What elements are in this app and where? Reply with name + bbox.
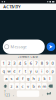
button[interactable]: a	[4, 75, 9, 82]
button[interactable]: u	[34, 68, 39, 74]
staticText: n	[38, 83, 40, 89]
staticText: p	[52, 68, 54, 73]
button[interactable]: 5	[23, 60, 28, 66]
staticText: 9	[46, 61, 48, 66]
staticText: b	[32, 83, 34, 89]
button[interactable]	[17, 90, 39, 97]
button[interactable]: k	[42, 75, 47, 82]
button[interactable]: 8	[39, 60, 44, 66]
staticText: h	[32, 76, 34, 81]
button[interactable]: h	[31, 75, 36, 82]
staticText: 4	[19, 61, 21, 66]
staticText: i	[41, 68, 42, 73]
button[interactable]: 2	[6, 60, 11, 66]
button[interactable]: q	[1, 68, 6, 74]
button[interactable]: 9	[45, 60, 50, 66]
button[interactable]: Emoji	[5, 45, 9, 49]
button[interactable]: 3	[12, 60, 17, 66]
button[interactable]: y	[28, 68, 33, 74]
staticText: u	[35, 68, 37, 73]
staticText: j	[38, 76, 39, 81]
staticText: l	[49, 76, 50, 81]
button[interactable]: Send	[47, 42, 55, 51]
button[interactable]: Backspace	[47, 83, 54, 89]
button[interactable]: w	[6, 68, 11, 74]
staticText: 3	[13, 61, 15, 66]
staticText: 6	[30, 61, 32, 66]
staticText: y	[30, 68, 32, 73]
button[interactable]: 4	[17, 60, 22, 66]
button[interactable]: 6	[28, 60, 33, 66]
button[interactable]: n	[36, 83, 41, 89]
button[interactable]: g	[26, 75, 30, 82]
button[interactable]: t	[23, 68, 28, 74]
button[interactable]: e	[12, 68, 17, 74]
staticText: z	[11, 83, 13, 89]
staticText: s	[11, 76, 13, 81]
button[interactable]: d	[15, 75, 19, 82]
button[interactable]: b	[31, 83, 36, 89]
staticText: x	[16, 83, 18, 89]
button[interactable]: f	[20, 75, 25, 82]
staticText: r	[19, 68, 21, 73]
button[interactable]: ,	[11, 90, 16, 97]
button[interactable]: j	[36, 75, 41, 82]
staticText: 0	[52, 61, 54, 66]
staticText: k	[43, 76, 45, 81]
button[interactable]: ACTIVITY	[1, 3, 22, 10]
staticText: m	[42, 83, 46, 89]
button[interactable]: o	[45, 68, 50, 74]
button[interactable]: ?123	[4, 90, 10, 97]
button[interactable]: z	[9, 83, 14, 89]
staticText: ACTIVITY	[3, 4, 20, 9]
staticText: v	[27, 83, 29, 89]
button[interactable]: m	[42, 83, 47, 89]
staticText: Message	[10, 44, 26, 49]
button[interactable]: v	[26, 83, 30, 89]
staticText: t	[25, 68, 26, 73]
button[interactable]: 1	[1, 60, 6, 66]
staticText: g	[27, 76, 29, 81]
button[interactable]: r	[17, 68, 22, 74]
staticText: f	[22, 76, 23, 81]
button[interactable]: p	[50, 68, 55, 74]
button[interactable]: i	[39, 68, 44, 74]
button[interactable]: Common Cause	[17, 55, 38, 59]
staticText: 8	[41, 61, 43, 66]
staticText: a	[5, 76, 7, 81]
staticText: c	[21, 83, 23, 89]
button[interactable]: c	[20, 83, 25, 89]
staticText: 7	[35, 61, 37, 66]
button[interactable]: Shift	[2, 83, 9, 89]
staticText: Common Cause	[17, 55, 38, 59]
button[interactable]: Enter	[46, 90, 52, 97]
button[interactable]: 7	[34, 60, 39, 66]
staticText: ,	[13, 91, 14, 96]
staticText: e	[13, 68, 15, 73]
staticText: d	[16, 76, 18, 81]
button[interactable]: x	[15, 83, 20, 89]
staticText: w	[7, 68, 10, 73]
button[interactable]: 0	[50, 60, 55, 66]
staticText: 1	[2, 61, 4, 66]
button[interactable]: l	[47, 75, 52, 82]
staticText: o	[46, 68, 48, 73]
button[interactable]: s	[9, 75, 14, 82]
staticText: .	[42, 91, 43, 96]
staticText: q	[2, 68, 4, 73]
staticText: 2	[8, 61, 10, 66]
staticText: ?123	[4, 90, 10, 97]
staticText: 5	[24, 61, 26, 66]
